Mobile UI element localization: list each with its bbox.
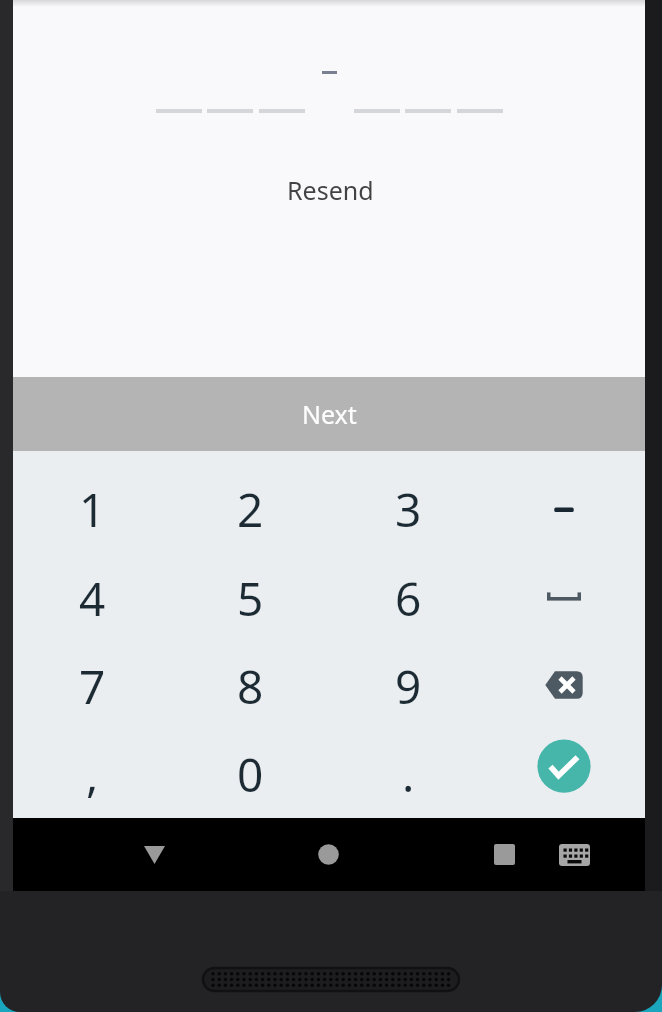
staticText: 2 [237,478,264,541]
button[interactable]: 6 [329,554,487,642]
staticText: 1 [79,478,106,541]
staticText: 8 [237,655,264,718]
button[interactable]: 8 [171,642,329,730]
button[interactable]: 2 [171,465,329,554]
button[interactable]: , [13,730,171,818]
button[interactable] [296,818,360,891]
button[interactable]: 7 [13,642,171,730]
button[interactable] [550,818,598,891]
button[interactable] [472,818,536,891]
staticText: 7 [79,655,106,718]
staticText: 3 [395,478,422,541]
button[interactable] [487,730,645,818]
staticText: Next [302,397,357,431]
button[interactable]: 1 [13,465,171,554]
button[interactable]: 5 [171,554,329,642]
button[interactable] [487,554,645,642]
button[interactable] [487,642,645,730]
staticText: , [86,743,99,806]
button[interactable]: 4 [13,554,171,642]
button[interactable]: Next [13,377,645,451]
button[interactable]: Resend [260,166,400,214]
button[interactable]: . [329,730,487,818]
staticText: 5 [237,567,264,630]
button[interactable]: 9 [329,642,487,730]
staticText: Resend [287,173,374,207]
button[interactable]: 0 [171,730,329,818]
button[interactable] [122,818,186,891]
staticText: 4 [79,567,106,630]
button[interactable]: 3 [329,465,487,554]
staticText: 0 [237,743,264,806]
button[interactable] [487,465,645,554]
staticText: 6 [395,567,422,630]
staticText: 9 [395,655,422,718]
staticText: . [402,743,415,806]
